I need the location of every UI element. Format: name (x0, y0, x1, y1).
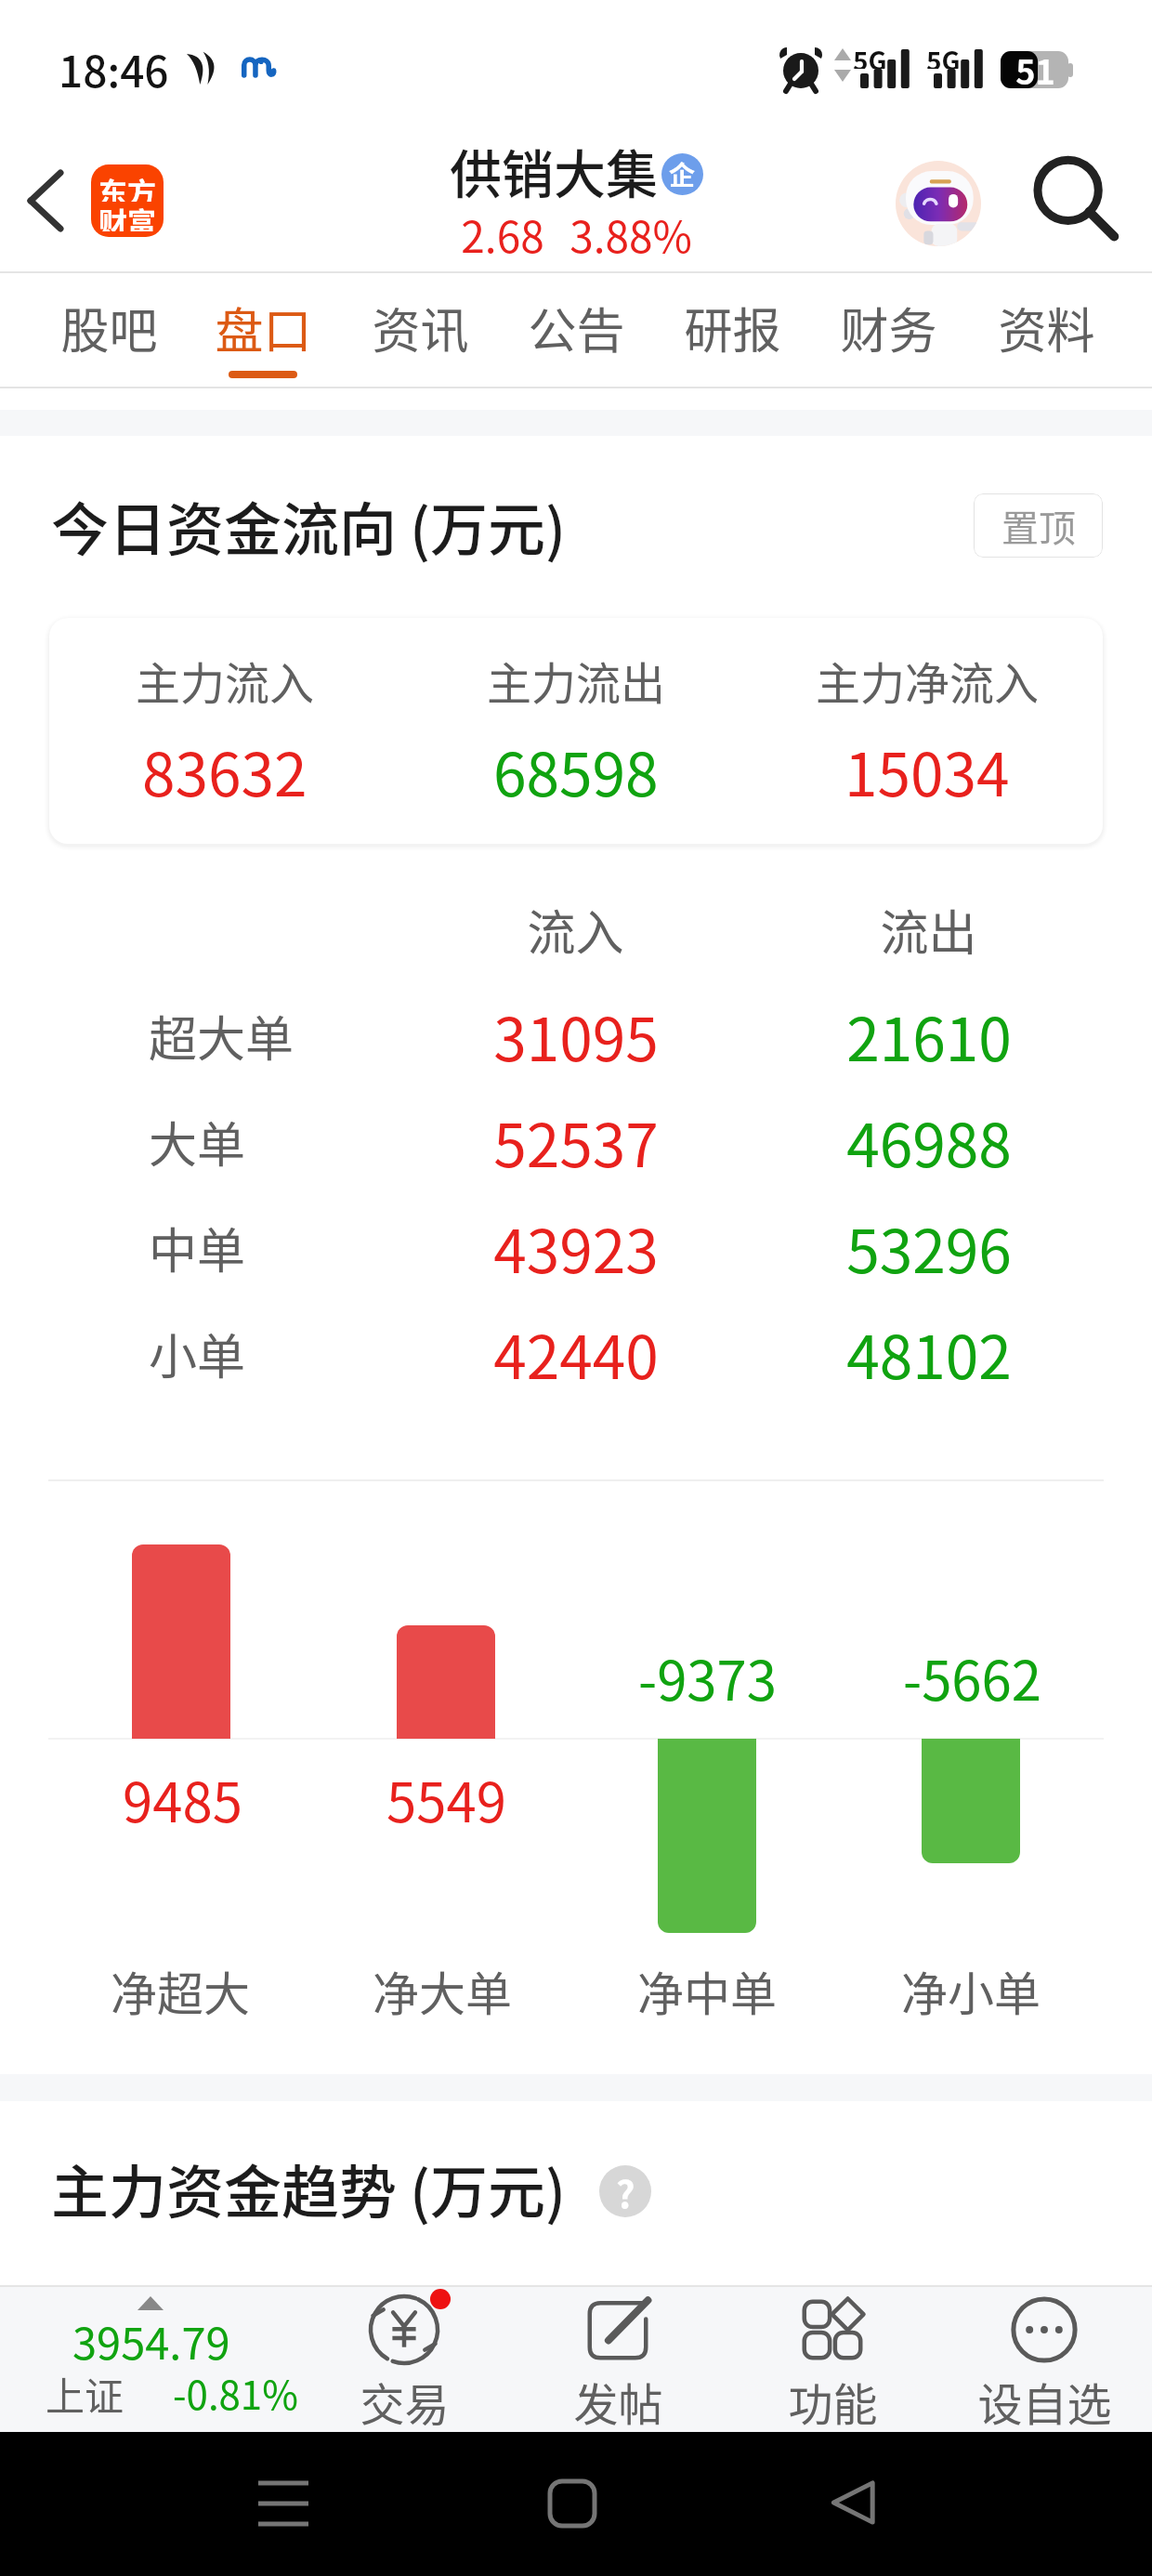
staticText: 43923 (493, 1204, 659, 1291)
button[interactable]: Back (8, 164, 83, 238)
staticText: 资料 (998, 293, 1095, 362)
staticText: 15034 (844, 728, 1010, 814)
staticText: 3.88% (569, 204, 692, 266)
staticText: 盘口 (215, 293, 312, 362)
button[interactable]: 发帖 (516, 2287, 720, 2432)
staticText: 31095 (493, 992, 659, 1079)
button[interactable]: Help (599, 2165, 651, 2217)
staticText: 交易 (360, 2369, 450, 2434)
staticText: 企 (669, 155, 696, 193)
staticText: 净小单 (901, 1957, 1041, 2024)
staticText: 主力流出 (487, 648, 666, 713)
staticText: 财务 (840, 293, 937, 362)
staticText: 上证 (46, 2365, 124, 2422)
staticText: 5G (853, 41, 887, 69)
staticText: 5549 (386, 1760, 506, 1838)
button[interactable] (48, 1300, 1104, 1406)
staticText: 53296 (846, 1204, 1012, 1291)
button[interactable]: Search (1028, 152, 1121, 245)
staticText: 52537 (493, 1098, 659, 1185)
staticText: 净中单 (637, 1957, 777, 2024)
staticText: 68598 (493, 728, 659, 814)
staticText: 大单 (149, 1107, 246, 1176)
button[interactable]: 交易 (302, 2287, 506, 2432)
staticText: 发帖 (573, 2369, 663, 2434)
button[interactable]: 资讯 (344, 275, 496, 387)
button[interactable]: 置顶 (974, 493, 1103, 558)
staticText: 置顶 (1001, 499, 1076, 553)
button[interactable]: 研报 (656, 275, 808, 387)
staticText: 流出 (880, 895, 977, 965)
staticText: -9373 (638, 1638, 777, 1716)
staticText: 2.68 (461, 204, 544, 266)
staticText: 公告 (528, 293, 625, 362)
button[interactable]: 公告 (500, 275, 652, 387)
staticText: 48102 (846, 1310, 1012, 1397)
staticText: 46988 (846, 1098, 1012, 1185)
staticText: 主力净流入 (816, 648, 1040, 713)
staticText: 流入 (527, 895, 624, 965)
staticText: 资讯 (372, 293, 469, 362)
staticText: 功能 (788, 2369, 878, 2434)
staticText: 小单 (149, 1319, 246, 1388)
button[interactable]: 财务 (812, 275, 964, 387)
button[interactable]: 主力净流入 (752, 618, 1103, 844)
staticText: 51 (1015, 46, 1055, 94)
button[interactable]: 主力流出 (400, 618, 752, 844)
staticText: 今日资金流向 (万元) (51, 484, 567, 568)
staticText: 东方 (98, 170, 156, 202)
staticText: 5G (926, 41, 961, 69)
button[interactable]: East Money home (91, 164, 164, 237)
staticText: 主力资金趋势 (万元) (51, 2147, 567, 2230)
button[interactable]: 资料 (970, 275, 1122, 387)
staticText: 主力流入 (136, 648, 315, 713)
button[interactable]: 功能 (730, 2287, 935, 2432)
staticText: 供销大集 (450, 133, 658, 208)
staticText: 18:46 (59, 38, 169, 100)
staticText: ? (616, 2165, 635, 2217)
button[interactable]: 盘口 (187, 275, 339, 387)
staticText: 净大单 (373, 1957, 512, 2024)
staticText: 中单 (149, 1213, 246, 1282)
staticText: 3954.79 (72, 2308, 230, 2372)
staticText: 财富 (98, 200, 156, 231)
button[interactable]: AI assistant (896, 161, 981, 246)
button[interactable]: 主力流入 (49, 618, 400, 844)
button[interactable]: 股吧 (33, 275, 185, 387)
staticText: 超大单 (149, 1001, 295, 1071)
button[interactable] (48, 982, 1104, 1088)
staticText: -0.81% (173, 2364, 298, 2421)
staticText: 9485 (123, 1760, 242, 1838)
button[interactable] (48, 1194, 1104, 1300)
button[interactable] (48, 1088, 1104, 1194)
button[interactable]: 设自选 (942, 2287, 1146, 2432)
staticText: -5662 (903, 1638, 1041, 1716)
staticText: 净超大 (111, 1957, 250, 2024)
staticText: 42440 (493, 1310, 659, 1397)
staticText: 研报 (684, 293, 781, 362)
staticText: 21610 (846, 992, 1012, 1079)
staticText: 股吧 (60, 293, 158, 362)
staticText: 设自选 (977, 2369, 1112, 2434)
button[interactable]: 3954.79 (0, 2287, 307, 2432)
staticText: 83632 (142, 728, 308, 814)
